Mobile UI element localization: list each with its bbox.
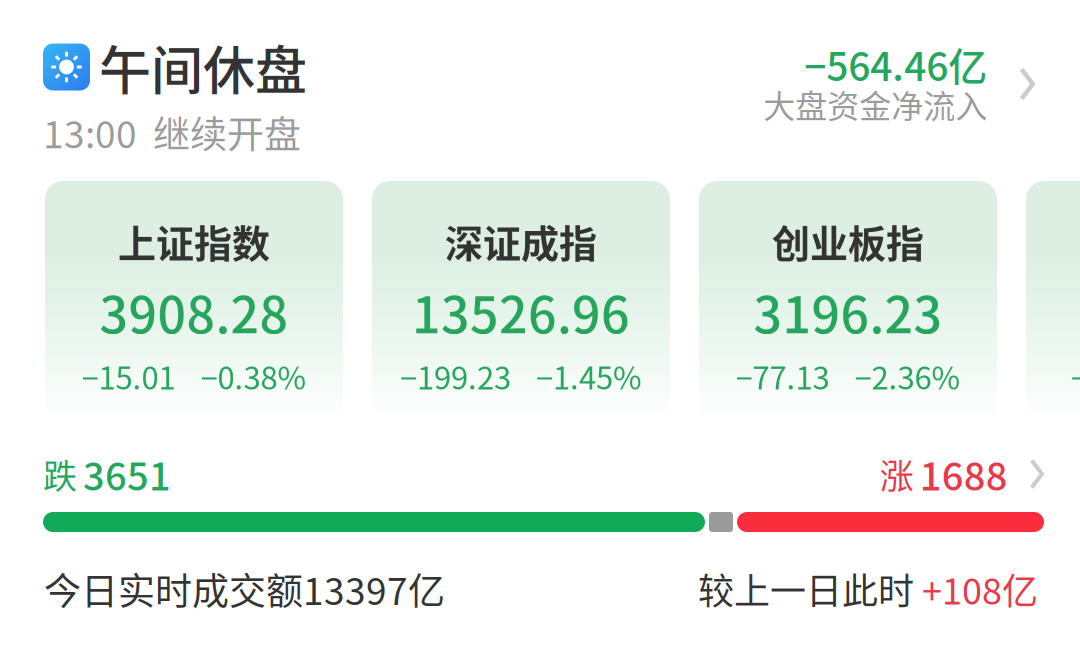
staticText: 上证指数 [118, 213, 270, 268]
staticText: −9.10 [1071, 354, 1080, 398]
staticText: 3651 [83, 446, 171, 501]
button[interactable]: 北证50 [1026, 181, 1080, 422]
button[interactable]: 午间休盘 [0, 0, 1080, 155]
staticText: +108亿 [922, 563, 1038, 615]
staticText: −77.13 [735, 354, 829, 398]
staticText: 今日实时成交额13397亿 [44, 562, 445, 616]
staticText: 13:00 继续开盘 [43, 105, 301, 159]
staticText: −199.23 [400, 354, 511, 398]
button[interactable]: 上证指数 [45, 181, 343, 422]
staticText: −15.01 [81, 354, 175, 398]
staticText: 1688 [920, 446, 1008, 501]
staticText: 13526.96 [412, 275, 630, 348]
staticText: −1.45% [536, 354, 642, 398]
button[interactable]: 创业板指 [699, 181, 997, 422]
staticText: 深证成指 [445, 213, 597, 268]
staticText: 涨 [880, 449, 914, 499]
staticText: 3908.28 [99, 275, 288, 348]
staticText: 创业板指 [772, 213, 924, 268]
staticText: 大盘资金净流入 [763, 81, 987, 127]
button[interactable]: 跌 [0, 422, 1080, 532]
staticText: 午间休盘 [99, 29, 307, 105]
staticText: 跌 [43, 449, 77, 499]
staticText: −2.36% [854, 354, 960, 398]
button[interactable]: 深证成指 [372, 181, 670, 422]
staticText: −564.46亿 [804, 36, 987, 92]
staticText: 3196.23 [753, 275, 942, 348]
staticText: 较上一日此时 [698, 563, 922, 615]
staticText: −0.38% [200, 354, 306, 398]
